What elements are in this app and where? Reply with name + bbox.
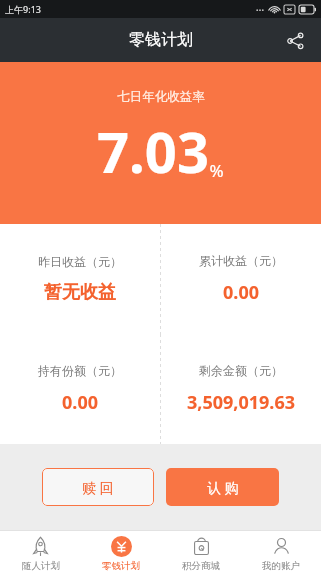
- staticText: 持有份额（元）: [38, 363, 122, 378]
- staticText: 0.00: [223, 280, 259, 305]
- button[interactable]: 积分商城: [161, 531, 241, 577]
- button[interactable]: 赎 回: [42, 468, 154, 506]
- staticText: 7.03: [97, 113, 209, 189]
- staticText: 赎 回: [82, 478, 114, 497]
- staticText: 积分商城: [182, 560, 220, 572]
- staticText: 随人计划: [22, 560, 60, 572]
- button[interactable]: 我的账户: [241, 531, 321, 577]
- button[interactable]: 认 购: [166, 468, 279, 506]
- button[interactable]: 累计收益（元）: [160, 224, 321, 334]
- staticText: 暂无收益: [44, 281, 116, 304]
- staticText: 0.00: [62, 390, 98, 415]
- staticText: 我的账户: [262, 560, 300, 572]
- staticText: %: [209, 159, 224, 182]
- staticText: 上午9:13: [5, 3, 41, 15]
- button[interactable]: 随人计划: [0, 531, 81, 577]
- staticText: 零钱计划: [102, 560, 140, 572]
- button[interactable]: 零钱计划: [81, 531, 161, 577]
- button[interactable]: 昨日收益（元）: [0, 224, 160, 334]
- button[interactable]: 剩余金额（元）: [160, 334, 321, 444]
- staticText: 认 购: [207, 478, 239, 497]
- staticText: 七日年化收益率: [117, 89, 205, 105]
- staticText: 3,509,019.63: [187, 390, 295, 415]
- button[interactable]: 持有份额（元）: [0, 334, 160, 444]
- button[interactable]: Share: [279, 24, 311, 56]
- staticText: 累计收益（元）: [199, 253, 283, 268]
- staticText: 剩余金额（元）: [199, 363, 283, 378]
- staticText: 零钱计划: [129, 30, 193, 50]
- staticText: 昨日收益（元）: [38, 254, 122, 269]
